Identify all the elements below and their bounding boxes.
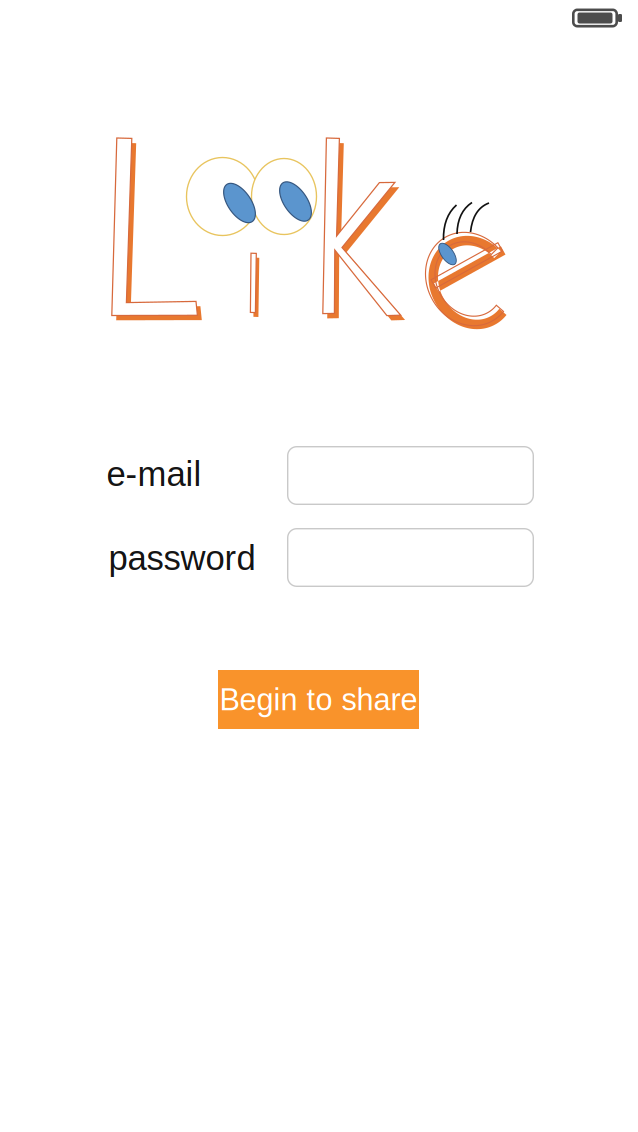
staticText: e-mail [106, 455, 201, 493]
button[interactable]: Begin to share [218, 670, 419, 729]
staticText: Begin to share [219, 682, 417, 717]
staticText: password [108, 539, 255, 577]
